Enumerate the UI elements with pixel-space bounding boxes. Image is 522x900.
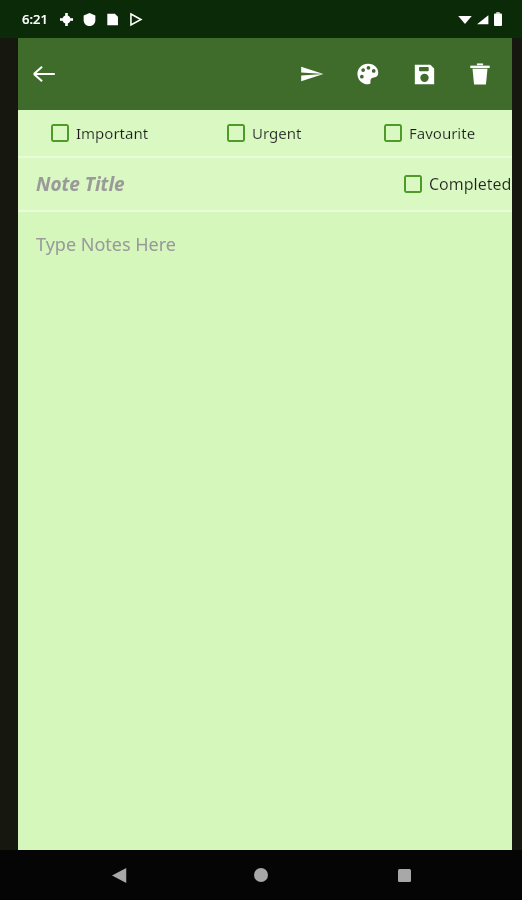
button[interactable]: Note Title — [36, 171, 404, 197]
button[interactable]: Urgent — [182, 123, 347, 143]
button[interactable]: Type Notes Here — [18, 212, 512, 850]
button[interactable]: Favourite — [347, 123, 512, 143]
button[interactable]: Back — [95, 851, 143, 899]
staticText: Urgent — [252, 123, 302, 143]
staticText: Completed — [429, 173, 512, 195]
button[interactable]: Colour palette — [340, 46, 396, 102]
staticText: Type Notes Here — [36, 232, 176, 257]
button[interactable]: Completed — [404, 173, 512, 195]
button[interactable]: Save — [396, 46, 452, 102]
button[interactable]: Delete — [452, 46, 508, 102]
button[interactable]: Send — [284, 46, 340, 102]
staticText: Important — [76, 123, 149, 143]
staticText: 6:21 — [22, 10, 48, 28]
staticText: Favourite — [409, 123, 476, 143]
button[interactable]: Important — [18, 123, 182, 143]
button[interactable]: Recent apps — [380, 851, 428, 899]
button[interactable]: Back — [18, 48, 70, 100]
button[interactable]: Home — [237, 851, 285, 899]
